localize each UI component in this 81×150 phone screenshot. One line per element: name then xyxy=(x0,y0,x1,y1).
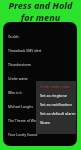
staticText: Under water xyxy=(8,76,28,81)
button[interactable]: The Theme of Water xyxy=(3,113,77,127)
button[interactable]: Order wake view xyxy=(36,82,76,91)
button[interactable]: Set as ringtone xyxy=(36,91,76,100)
button[interactable]: Set as default alarm sound xyxy=(36,109,76,118)
staticText: Ta-dah xyxy=(8,34,19,39)
staticText: The Theme of Water xyxy=(8,118,41,123)
staticText: for menu xyxy=(0,11,81,23)
staticText: Thunderstorm xyxy=(8,62,32,67)
button[interactable]: Throwback SMS alert xyxy=(3,43,77,57)
button[interactable]: Who is it xyxy=(3,85,77,99)
staticText: Your Lovely Sound xyxy=(8,132,38,137)
staticText: Set as ringtone xyxy=(40,93,67,98)
staticText: Share xyxy=(40,120,51,125)
staticText: Set as notification sound xyxy=(40,102,76,107)
button[interactable]: Share xyxy=(36,118,76,127)
staticText: Throwback SMS alert xyxy=(8,48,42,53)
staticText: Press and Hold xyxy=(0,0,81,11)
staticText: Who is it xyxy=(8,90,22,95)
staticText: Set as default alarm sound xyxy=(40,111,76,116)
button[interactable]: Michael Laughs xyxy=(3,99,77,113)
button[interactable]: Set as notification sound xyxy=(36,100,76,109)
staticText: Order wake view xyxy=(40,84,70,89)
button[interactable]: Your Lovely Sound xyxy=(3,127,77,141)
staticText: Michael Laughs xyxy=(8,104,33,109)
button[interactable]: Ta-dah xyxy=(3,29,77,43)
button[interactable]: Under water xyxy=(3,71,77,85)
button[interactable]: Thunderstorm xyxy=(3,57,77,71)
